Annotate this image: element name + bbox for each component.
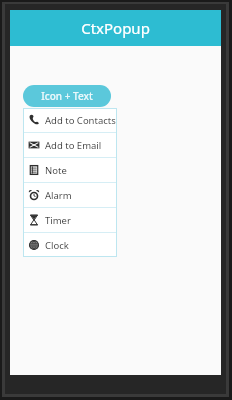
- staticText: Add to Email: [45, 139, 102, 152]
- staticText: CtxPopup: [81, 18, 150, 38]
- staticText: Timer: [45, 214, 71, 227]
- button[interactable]: Note: [23, 158, 117, 182]
- button[interactable]: Alarm: [23, 183, 117, 207]
- button[interactable]: Add to Contacts: [23, 108, 117, 132]
- staticText: Icon + Text: [41, 89, 93, 103]
- staticText: Alarm: [45, 189, 72, 202]
- button[interactable]: Icon + Text: [23, 85, 111, 107]
- staticText: Clock: [45, 239, 69, 252]
- staticText: Note: [45, 164, 67, 177]
- staticText: Add to Contacts: [45, 114, 116, 127]
- button[interactable]: Clock: [23, 233, 117, 257]
- button[interactable]: Add to Email: [23, 133, 117, 157]
- button[interactable]: Timer: [23, 208, 117, 232]
